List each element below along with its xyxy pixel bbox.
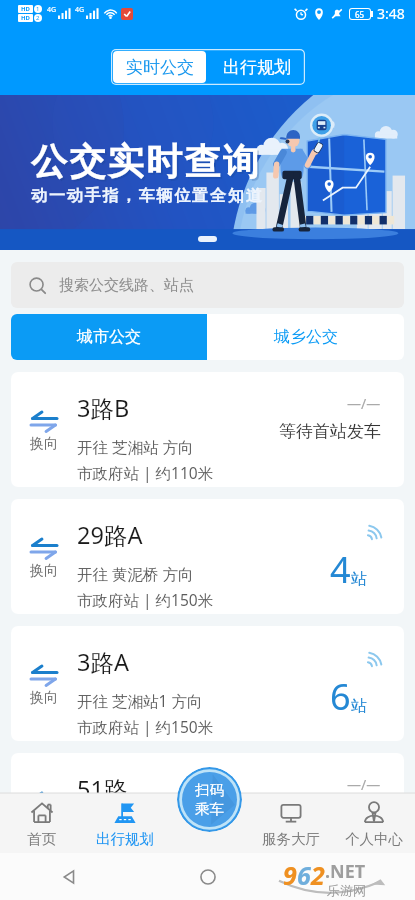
staticText: —/— [347, 394, 381, 413]
button[interactable]: 换向 [11, 412, 77, 487]
staticText: 换向 [30, 816, 58, 834]
staticText: 开往 芝湘站1 方向 [77, 690, 203, 711]
button[interactable]: Back [57, 864, 83, 890]
staticText: 实时公交 [126, 57, 194, 78]
button[interactable]: 首页 [0, 793, 83, 853]
staticText: 3:48 [377, 4, 405, 23]
button[interactable]: 换向 [11, 539, 77, 614]
button[interactable]: 出行规划 [208, 49, 305, 85]
staticText: 换向 [30, 562, 58, 580]
button[interactable]: 换向 [11, 626, 404, 741]
staticText: 市政府站 | 约110米 [77, 462, 214, 483]
staticText: 4G [47, 5, 57, 15]
staticText: 等待首站发车 [279, 421, 381, 442]
staticText: 65 [355, 9, 365, 19]
staticText: 个人中心 [345, 830, 403, 848]
staticText: 9 [283, 858, 297, 892]
staticText: 出行规划 [96, 830, 154, 848]
staticText: 3路A [77, 646, 129, 678]
button[interactable]: 换向 [11, 793, 77, 868]
staticText: 3路B [77, 392, 130, 424]
button[interactable]: 出行规划 [83, 793, 166, 853]
button[interactable]: 个人中心 [332, 793, 415, 853]
button[interactable]: 实时公交 [113, 51, 206, 83]
staticText: HD [21, 14, 30, 22]
staticText: 51路 [77, 773, 128, 805]
staticText: 城市公交 [77, 327, 141, 347]
button[interactable]: 扫码 [177, 767, 242, 832]
button[interactable]: 搜索公交线路、站点 [11, 262, 404, 308]
staticText: 首页 [27, 830, 56, 848]
staticText: 换向 [30, 689, 58, 707]
button[interactable]: 城乡公交 [207, 314, 404, 360]
staticText: 城乡公交 [274, 327, 338, 347]
staticText: 29路A [77, 519, 143, 551]
button[interactable]: 换向 [11, 372, 404, 487]
staticText: 开往 芝湘站 方向 [77, 817, 194, 838]
button[interactable]: 服务大厅 [249, 793, 332, 853]
staticText: 市政府站 | 约150米 [77, 716, 214, 737]
staticText: —/— [347, 775, 381, 794]
staticText: 6 [297, 858, 311, 892]
button[interactable]: 换向 [11, 753, 404, 868]
staticText: 市政府站 | 约110米 [77, 843, 214, 864]
staticText: 公交实时查询 [31, 139, 262, 184]
staticText: 扫码 [195, 781, 224, 799]
staticText: 搜索公交线路、站点 [59, 276, 194, 295]
staticText: 站 [351, 569, 367, 589]
staticText: 乘车 [195, 800, 224, 818]
staticText: 1 [36, 5, 40, 13]
staticText: 开往 芝湘站 方向 [77, 436, 194, 457]
staticText: 4 [330, 545, 351, 594]
staticText: 站 [351, 696, 367, 716]
staticText: 动一动手指，车辆位置全知道 [31, 186, 264, 206]
staticText: 2 [311, 858, 325, 892]
staticText: 市政府站 | 约150米 [77, 589, 214, 610]
staticText: 换向 [30, 435, 58, 453]
button[interactable]: Home [195, 864, 221, 890]
staticText: HD [21, 5, 30, 13]
staticText: 4G [75, 5, 85, 15]
staticText: 公交实时查询 [33, 141, 264, 186]
button[interactable]: 换向 [11, 666, 77, 741]
staticText: 6 [330, 672, 351, 721]
staticText: 服务大厅 [262, 830, 320, 848]
button[interactable]: Recents [333, 864, 359, 890]
staticText: .NET [325, 859, 366, 884]
button[interactable]: 城市公交 [11, 314, 207, 360]
staticText: 等待首站发车 [279, 802, 381, 823]
staticText: 开往 黄泥桥 方向 [77, 563, 194, 584]
staticText: 2 [36, 14, 40, 22]
staticText: 乐游网 [327, 882, 366, 898]
button[interactable]: 换向 [11, 499, 404, 614]
staticText: 出行规划 [223, 57, 291, 78]
